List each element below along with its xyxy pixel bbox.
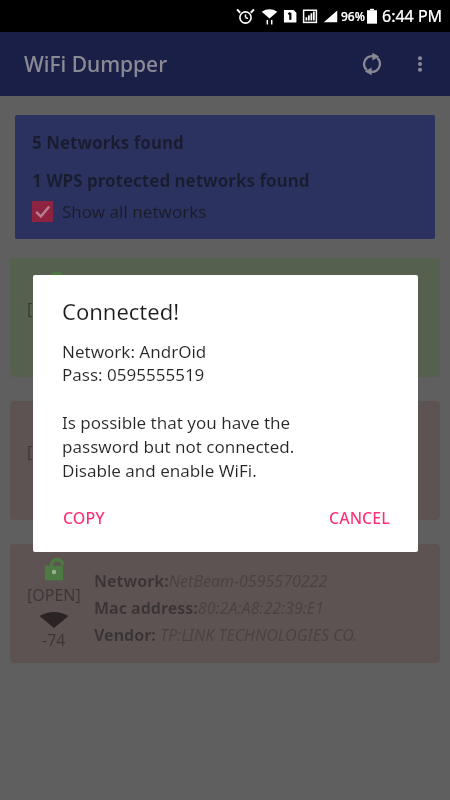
staticText: CANCEL [329, 507, 390, 529]
button[interactable]: CANCEL [317, 498, 402, 538]
staticText: 96% [341, 8, 365, 24]
button[interactable]: [OPEN] [10, 258, 440, 377]
staticText: Show all networks [62, 200, 207, 223]
staticText: -74 [42, 629, 66, 651]
staticText: [OPEN] [27, 298, 81, 320]
staticText: Network: AndrOid Pass: 0595555519 [62, 340, 207, 386]
staticText: COPY [63, 507, 105, 529]
staticText: Network:AndrOid [94, 284, 228, 306]
staticText: Mac address:80:2A:A8:22:39:E1 [94, 597, 324, 619]
staticText: Mac address:64:66:B3:A1:2C:90 [94, 311, 326, 333]
staticText: Is possible that you have the password b… [62, 411, 295, 482]
staticText: 6:44 PM [382, 5, 443, 27]
button[interactable]: COPY [51, 498, 117, 538]
staticText: Network:ENG_ABU_3BIDA [94, 427, 285, 449]
staticText: -68 [42, 343, 66, 365]
staticText: 1 WPS protected networks found [32, 169, 310, 192]
button[interactable]: Show all networks [32, 200, 207, 223]
staticText: Mac address:B0:48:7A:A1:7D:C4 [94, 454, 328, 476]
staticText: WiFi Dumpper [24, 50, 168, 79]
staticText: Connected! [62, 296, 180, 326]
staticText: [WPA2] [27, 441, 81, 463]
staticText: Vendor: TP:LINK TECHNOLOGIES CO. [94, 338, 358, 360]
button[interactable]: [OPEN] [10, 544, 440, 663]
staticText: [OPEN] [27, 584, 81, 606]
button[interactable]: More options [396, 40, 444, 88]
staticText: Vendor: TP:LINK TECHNOLOGIES CO. [94, 624, 358, 646]
staticText: Network:NetBeam-0595570222 [94, 570, 328, 592]
staticText: 5 Networks found [32, 131, 184, 154]
button[interactable]: [WPA2] [10, 401, 440, 520]
button[interactable]: Refresh [348, 40, 396, 88]
